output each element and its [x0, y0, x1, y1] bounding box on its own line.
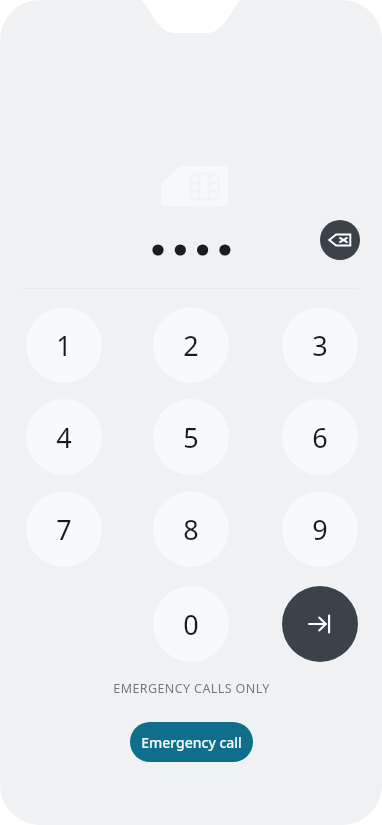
- button[interactable]: 8: [153, 491, 229, 567]
- staticText: 2: [183, 327, 199, 364]
- button[interactable]: 4: [26, 399, 102, 475]
- staticText: 4: [56, 419, 72, 456]
- staticText: 9: [312, 511, 328, 548]
- button[interactable]: 2: [153, 307, 229, 383]
- staticText: 5: [183, 419, 199, 456]
- button[interactable]: Enter: [282, 586, 358, 662]
- button[interactable]: 5: [153, 399, 229, 475]
- button[interactable]: Emergency call: [130, 722, 253, 762]
- button[interactable]: 6: [282, 399, 358, 475]
- staticText: 6: [312, 419, 328, 456]
- staticText: 3: [312, 327, 328, 364]
- button[interactable]: Delete: [320, 220, 360, 260]
- button[interactable]: 7: [26, 491, 102, 567]
- button[interactable]: 1: [26, 307, 102, 383]
- button[interactable]: 0: [153, 586, 229, 662]
- staticText: 7: [56, 511, 72, 548]
- button[interactable]: 9: [282, 491, 358, 567]
- staticText: Emergency call: [141, 733, 242, 752]
- button[interactable]: 3: [282, 307, 358, 383]
- staticText: 8: [183, 511, 199, 548]
- staticText: EMERGENCY CALLS ONLY: [113, 680, 270, 697]
- staticText: 0: [183, 606, 199, 643]
- staticText: 1: [56, 327, 72, 364]
